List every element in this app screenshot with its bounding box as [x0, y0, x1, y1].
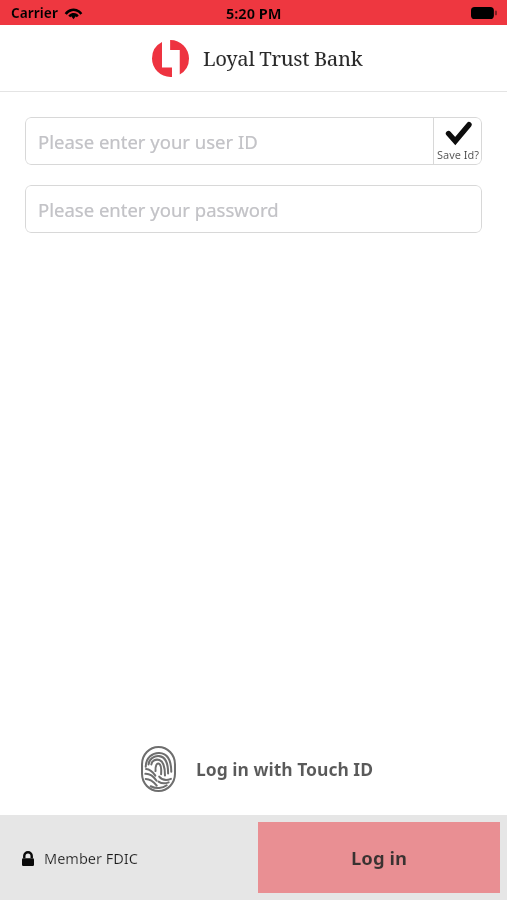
button[interactable]: Save Id: [434, 117, 482, 165]
staticText: Loyal Trust Bank: [203, 45, 363, 72]
staticText: Log in: [351, 845, 407, 870]
button[interactable]: Please enter your user ID: [25, 117, 482, 165]
button[interactable]: Member FDIC: [22, 848, 138, 868]
staticText: Member FDIC: [44, 848, 138, 868]
staticText: Please enter your user ID: [38, 129, 258, 154]
staticText: Log in with Touch ID: [196, 757, 373, 781]
staticText: Carrier: [11, 4, 58, 22]
staticText: 5:20 PM: [226, 3, 282, 23]
staticText: Please enter your password: [38, 197, 279, 222]
button[interactable]: Log in: [258, 822, 500, 893]
button[interactable]: Please enter your password: [25, 185, 482, 233]
staticText: Save Id?: [437, 147, 480, 162]
button[interactable]: Log in with Touch ID: [135, 742, 379, 796]
